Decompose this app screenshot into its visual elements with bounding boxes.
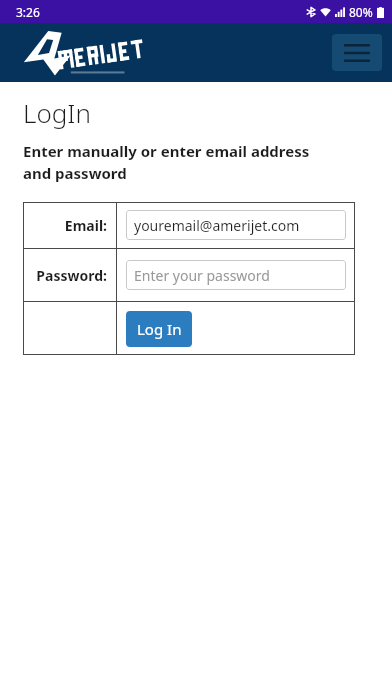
staticText: LogIn — [23, 95, 91, 130]
staticText: youremail@amerijet.com — [134, 216, 300, 235]
staticText: 3:26 — [16, 4, 40, 20]
staticText: Enter manually or enter email address an… — [23, 141, 332, 184]
staticText: 80% — [349, 4, 373, 20]
staticText: Password: — [36, 266, 107, 285]
button[interactable]: youremail@amerijet.com — [126, 210, 346, 240]
staticText: Email: — [64, 216, 107, 235]
staticText: Enter your password — [134, 266, 270, 285]
button[interactable]: Amerijet home — [22, 30, 144, 76]
button[interactable]: Menu — [332, 34, 382, 71]
staticText: Log In — [137, 319, 182, 339]
button[interactable]: Log In — [126, 311, 192, 347]
button[interactable]: Enter your password — [126, 260, 346, 290]
